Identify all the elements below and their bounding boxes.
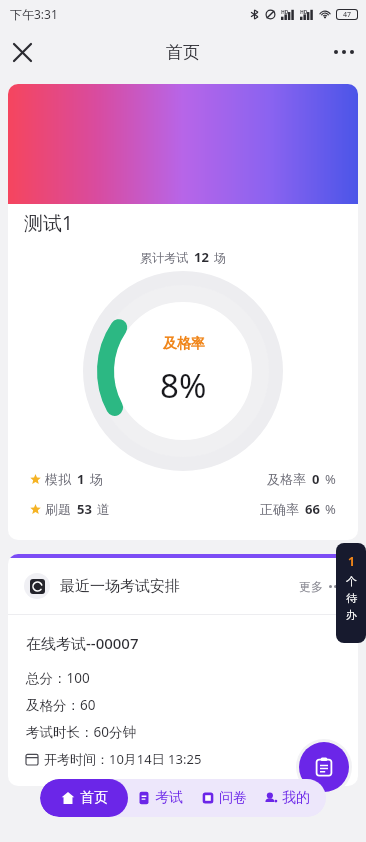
staticText: 更多 [299,579,323,594]
staticText: 测试1 [24,210,73,236]
staticText: 66 [305,500,320,518]
staticText: 及格率 [267,471,306,487]
staticText: 总分：100 [26,669,90,687]
button[interactable]: 我的 [255,779,318,817]
staticText: 个 [346,574,357,588]
staticText: 模拟 [45,471,71,487]
button[interactable]: 更多 [322,30,366,74]
staticText: 0 [312,470,320,488]
staticText: 及格分：60 [26,696,96,714]
staticText: 在线考试--00007 [26,633,139,653]
staticText: 刷题 [45,501,71,517]
staticText: HD [281,9,289,16]
staticText: 场 [214,250,226,265]
staticText: HD [300,9,308,16]
staticText: 47 [343,10,352,19]
staticText: 考试 [155,789,183,807]
staticText: 场 [90,471,103,487]
button[interactable]: 关闭 [0,30,44,74]
staticText: 待 [346,591,357,605]
staticText: 首页 [80,789,108,807]
staticText: 首页 [166,42,200,63]
staticText: 最近一场考试安排 [60,577,180,596]
button[interactable]: 考试 [128,779,192,817]
staticText: 考试时长：60分钟 [26,723,136,741]
staticText: 及格率 [163,335,205,353]
staticText: % [325,470,336,488]
staticText: 下午3:31 [10,6,58,22]
staticText: 8% [160,363,207,408]
button[interactable]: 1个待办 [336,543,366,643]
staticText: 53 [77,500,92,518]
staticText: 正确率 [260,501,299,517]
staticText: 我的 [282,789,310,807]
button[interactable]: 考试记录 [299,742,349,792]
staticText: 办 [346,608,357,622]
staticText: 1 [77,470,85,488]
staticText: % [325,500,336,518]
staticText: 累计考试 [140,250,188,265]
staticText: 12 [194,248,209,266]
staticText: 道 [97,501,110,517]
staticText: 1 [348,553,355,569]
button[interactable]: 首页 [40,779,128,817]
button[interactable]: 最近一场考试安排 [8,558,358,614]
staticText: 问卷 [219,789,247,807]
button[interactable]: 问卷 [192,779,255,817]
staticText: 开考时间：10月14日 13:25 [44,750,202,768]
